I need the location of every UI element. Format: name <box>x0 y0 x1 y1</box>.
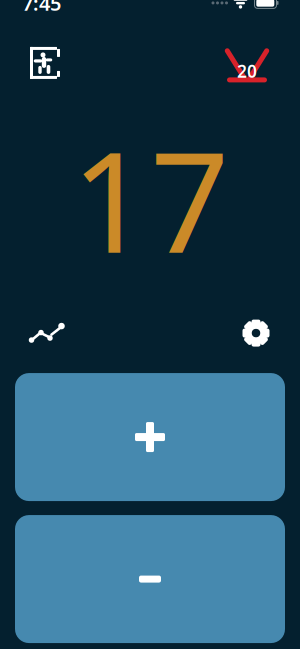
button[interactable]: Statistics <box>30 320 64 346</box>
staticText: 17 <box>71 107 229 291</box>
button[interactable]: Exit <box>30 47 60 79</box>
staticText: 20 <box>237 59 257 82</box>
staticText: 7:45 <box>22 0 61 16</box>
button[interactable]: Settings <box>242 319 270 347</box>
button[interactable]: Increase <box>15 373 285 501</box>
button[interactable]: Speed limit 20 <box>224 43 270 83</box>
button[interactable]: Decrease <box>15 515 285 643</box>
